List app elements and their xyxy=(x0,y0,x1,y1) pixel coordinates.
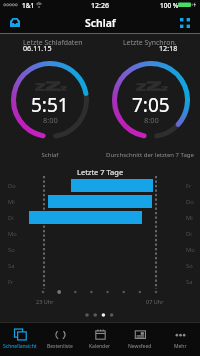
staticText: Letzte Synchron. xyxy=(123,38,177,47)
button[interactable]: Posteingang xyxy=(0,11,30,34)
staticText: Fr xyxy=(186,182,192,190)
staticText: 12:26 xyxy=(91,1,109,11)
staticText: Sa xyxy=(186,278,193,286)
staticText: Letzte 7 Tage xyxy=(77,167,124,177)
staticText: 07 Uhr xyxy=(146,298,164,305)
staticText: Mehr xyxy=(174,343,187,350)
staticText: 8:00 xyxy=(43,115,58,125)
staticText: Mo xyxy=(8,230,17,238)
staticText: 100 % xyxy=(160,1,179,10)
staticText: 06.11.15 xyxy=(23,43,52,53)
staticText: 7:05 xyxy=(132,92,170,118)
staticText: Sa xyxy=(8,262,15,270)
staticText: 12:18 xyxy=(159,43,178,53)
button[interactable]: Mehr xyxy=(160,322,200,356)
staticText: Newsfeed xyxy=(128,343,152,350)
staticText: Bestenliste xyxy=(47,343,73,350)
button[interactable]: Kacheln xyxy=(170,11,200,34)
staticText: Letzte Schlafdaten xyxy=(23,38,83,47)
staticText: Do xyxy=(8,182,16,190)
staticText: Mi xyxy=(8,198,15,206)
staticText: 5:51 xyxy=(31,92,69,118)
staticText: Fr xyxy=(8,278,14,286)
staticText: So xyxy=(186,262,193,270)
staticText: 1&1 xyxy=(22,1,35,10)
staticText: Di xyxy=(186,230,192,238)
staticText: Mo xyxy=(186,246,195,254)
staticText: 8:00 xyxy=(144,115,159,125)
staticText: Durchschnitt der letzten 7 Tage xyxy=(100,151,200,159)
staticText: Mi xyxy=(186,214,193,222)
button[interactable]: Schnellansicht xyxy=(0,322,40,356)
staticText: So xyxy=(8,246,15,254)
staticText: Do xyxy=(186,198,194,206)
staticText: 23 Uhr xyxy=(36,298,54,305)
staticText: Schnellansicht xyxy=(3,343,37,350)
button[interactable]: 7:05 xyxy=(112,61,190,139)
button[interactable]: Newsfeed xyxy=(120,322,160,356)
button[interactable]: 5:51 xyxy=(11,61,89,139)
staticText: Schlaf xyxy=(0,151,100,159)
button[interactable]: Kalender xyxy=(80,322,120,356)
staticText: Di xyxy=(8,214,14,222)
button[interactable]: Bestenliste xyxy=(40,322,80,356)
staticText: Kalender xyxy=(89,343,111,350)
staticText: Schlaf xyxy=(85,16,116,30)
